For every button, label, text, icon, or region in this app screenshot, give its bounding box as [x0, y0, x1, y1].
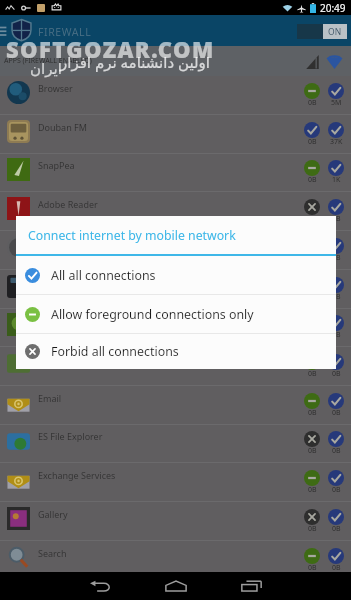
button[interactable]: Search: [0, 541, 351, 580]
button[interactable]: Connect internet by mobile network: [16, 216, 336, 369]
staticText: 0B: [332, 446, 341, 456]
staticText: 20:49: [320, 1, 346, 15]
button[interactable]: Downloads: [0, 347, 351, 386]
button[interactable]: APPS (FIREWALL ENABLED): [0, 46, 351, 76]
staticText: 5M: [331, 98, 342, 108]
staticText: APPS (FIREWALL ENABLED): [4, 56, 92, 66]
button[interactable]: 0B: [304, 431, 320, 457]
button[interactable]: 0B: [328, 509, 344, 535]
button[interactable]: ON: [297, 24, 347, 39]
staticText: 0B: [308, 369, 317, 379]
staticText: Calculator: [38, 276, 81, 288]
button[interactable]: Exchange Services: [0, 463, 351, 502]
staticText: 0B: [332, 408, 341, 418]
staticText: SOFTGOZAR.COM: [6, 34, 215, 64]
staticText: 0B: [308, 137, 317, 147]
button[interactable]: 0B: [304, 354, 320, 380]
button[interactable]: Allow foreground connections only: [16, 295, 336, 333]
staticText: Connect internet by mobile network: [28, 227, 236, 244]
staticText: Exchange Services: [38, 469, 116, 481]
staticText: 0B: [308, 253, 317, 263]
button[interactable]: 0B: [328, 470, 344, 496]
button[interactable]: Browser: [0, 76, 351, 115]
button[interactable]: 0B: [328, 199, 344, 225]
other: Wi-Fi column: [327, 55, 342, 69]
staticText: Douban FM: [38, 121, 87, 133]
button[interactable]: Email: [0, 386, 351, 425]
staticText: اولین دانشنامه نرم افزار: [60, 52, 210, 72]
staticText: 0B: [308, 98, 317, 108]
button[interactable]: 1K: [328, 160, 344, 186]
button[interactable]: ES File Explorer: [0, 424, 351, 463]
staticText: 0B: [332, 253, 341, 263]
staticText: ایران: [30, 60, 62, 77]
button[interactable]: Douban FM: [0, 115, 351, 154]
staticText: Downloads: [38, 353, 86, 365]
button[interactable]: Home: [151, 572, 201, 600]
staticText: ES File Explorer: [38, 430, 103, 442]
staticText: Browser: [38, 82, 73, 94]
staticText: 0B: [308, 446, 317, 456]
button[interactable]: SnapPea: [0, 153, 351, 192]
button[interactable]: Forbid all connections: [16, 334, 336, 369]
button[interactable]: Calendar: [0, 308, 351, 347]
other: Mobile network column: [306, 55, 319, 69]
staticText: Clock: [38, 237, 61, 249]
staticText: 0B: [332, 369, 341, 379]
staticText: 0B: [332, 485, 341, 495]
button[interactable]: 0B: [304, 83, 320, 109]
button[interactable]: All all connections: [16, 256, 336, 294]
staticText: Calendar: [38, 314, 76, 326]
button[interactable]: Adobe Reader: [0, 192, 351, 231]
staticText: Search: [38, 547, 67, 559]
staticText: FIREWALL: [38, 25, 92, 39]
staticText: ON: [328, 26, 342, 38]
button[interactable]: 0B: [304, 199, 320, 225]
staticText: Allow foreground connections only: [51, 306, 254, 323]
staticText: 0B: [308, 408, 317, 418]
staticText: 0B: [308, 175, 317, 185]
button[interactable]: 0B: [304, 470, 320, 496]
button[interactable]: 0B: [328, 315, 344, 341]
button[interactable]: Back: [75, 572, 125, 600]
staticText: 37K: [330, 137, 343, 147]
button[interactable]: 0B: [328, 238, 344, 264]
staticText: Gallery: [38, 508, 68, 520]
button[interactable]: 0B: [328, 431, 344, 457]
button[interactable]: Gallery: [0, 502, 351, 541]
button[interactable]: 0B: [328, 393, 344, 419]
button[interactable]: 0B: [328, 277, 344, 303]
button[interactable]: 0B: [328, 354, 344, 380]
staticText: SnapPea: [38, 159, 75, 171]
staticText: 0B: [332, 330, 341, 340]
staticText: 0B: [308, 563, 317, 573]
staticText: 0B: [332, 214, 341, 224]
button[interactable]: 0B: [304, 277, 320, 303]
staticText: All all connections: [51, 267, 156, 284]
button[interactable]: 0B: [304, 122, 320, 148]
staticText: 0B: [332, 292, 341, 302]
button[interactable]: Recent apps: [226, 572, 276, 600]
staticText: Adobe Reader: [38, 198, 98, 210]
button[interactable]: Calculator: [0, 270, 351, 309]
staticText: 0B: [308, 485, 317, 495]
button[interactable]: 0B: [304, 509, 320, 535]
button[interactable]: Open navigation menu: [0, 20, 8, 41]
button[interactable]: 5M: [328, 83, 344, 109]
button[interactable]: 0B: [304, 160, 320, 186]
button[interactable]: 0B: [304, 393, 320, 419]
button[interactable]: 0B: [328, 548, 344, 574]
staticText: 1K: [332, 175, 341, 185]
button[interactable]: 0B: [304, 315, 320, 341]
button[interactable]: 0B: [304, 238, 320, 264]
staticText: Email: [38, 392, 62, 404]
button[interactable]: Clock: [0, 231, 351, 270]
staticText: 0B: [332, 524, 341, 534]
staticText: 0B: [308, 330, 317, 340]
button[interactable]: 0B: [304, 548, 320, 574]
staticText: 0B: [308, 214, 317, 224]
staticText: 0B: [308, 524, 317, 534]
button[interactable]: 37K: [328, 122, 344, 148]
staticText: 0B: [332, 563, 341, 573]
staticText: 0B: [308, 292, 317, 302]
